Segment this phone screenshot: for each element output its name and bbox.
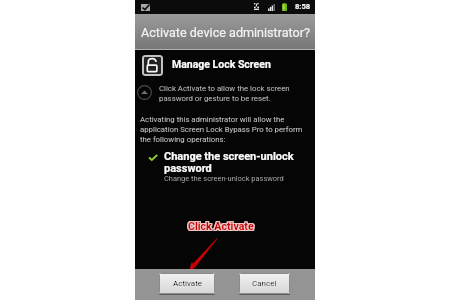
staticText: Click Activate [188, 221, 254, 233]
staticText: Click Activate [189, 220, 255, 232]
staticText: Manage Lock Screen [172, 58, 271, 70]
button[interactable]: Activate [159, 273, 215, 294]
staticText: Activating this administrator will allow… [140, 115, 303, 144]
staticText: Activate device administrator? [141, 25, 310, 40]
staticText: Cancel [252, 279, 277, 288]
staticText: Click Activate [187, 219, 253, 231]
staticText: Click Activate [188, 219, 254, 231]
staticText: Click Activate [188, 220, 254, 232]
staticText: 8:58 [295, 2, 311, 11]
button[interactable]: Collapse description [137, 85, 152, 100]
staticText: Click Activate to allow the lock screen … [159, 84, 290, 103]
staticText: Change the screen-unlock password [164, 150, 294, 175]
button[interactable]: Cancel [239, 273, 290, 294]
staticText: Click Activate [189, 221, 255, 233]
staticText: Activate [173, 279, 202, 288]
staticText: Click Activate [189, 219, 255, 231]
staticText: Change the screen-unlock password [164, 174, 284, 183]
staticText: Click Activate [187, 220, 253, 232]
staticText: Click Activate [187, 221, 253, 233]
